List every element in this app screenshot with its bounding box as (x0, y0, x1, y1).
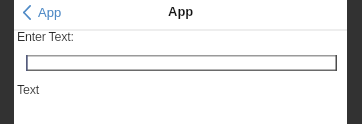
staticText: App (168, 4, 194, 19)
button[interactable]: Back to App (14, 0, 70, 26)
staticText: Enter Text: (17, 30, 74, 44)
button[interactable]: Text input field (26, 55, 337, 71)
staticText: Text (17, 83, 39, 97)
staticText: App (38, 5, 62, 20)
